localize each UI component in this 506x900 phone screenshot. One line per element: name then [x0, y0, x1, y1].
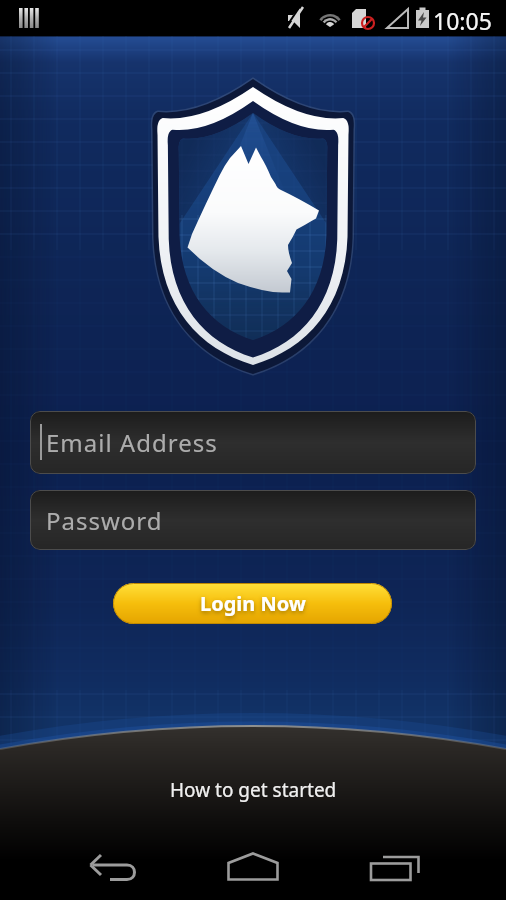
button[interactable] [218, 835, 288, 895]
staticText: Password [46, 504, 163, 537]
button[interactable]: Login Now [113, 583, 392, 624]
staticText: How to get started [170, 777, 337, 803]
staticText: Email Address [46, 426, 218, 459]
button[interactable]: How to get started [0, 765, 506, 815]
staticText: 10:05 [433, 5, 492, 36]
staticText: Login Now [200, 590, 306, 617]
button[interactable] [355, 835, 425, 895]
button[interactable] [80, 835, 150, 895]
button[interactable]: Email Address [30, 411, 476, 474]
button[interactable]: Password [30, 490, 476, 550]
